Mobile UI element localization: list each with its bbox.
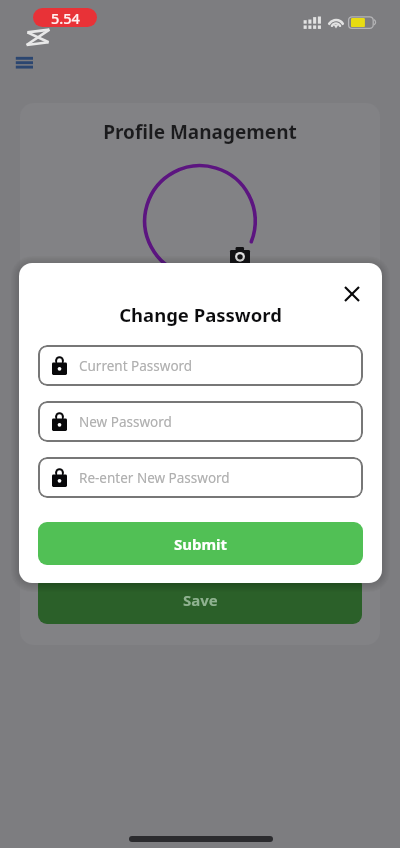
staticText: Profile Management (20, 119, 380, 145)
button[interactable]: Submit (38, 522, 363, 565)
staticText: Change Password (19, 302, 382, 327)
staticText: Current Password (79, 357, 193, 375)
staticText: Save (183, 590, 218, 610)
button[interactable]: Re-enter New Password (38, 457, 363, 498)
staticText: 5.54 (51, 8, 80, 27)
button[interactable]: Current Password (38, 345, 363, 386)
staticText: New Password (79, 413, 172, 431)
staticText: Submit (174, 534, 228, 554)
button[interactable]: Save (38, 576, 362, 624)
button[interactable]: New Password (38, 401, 363, 442)
staticText: Re-enter New Password (79, 469, 230, 487)
button[interactable]: Menu (10, 52, 40, 76)
button[interactable]: Close (334, 276, 369, 311)
